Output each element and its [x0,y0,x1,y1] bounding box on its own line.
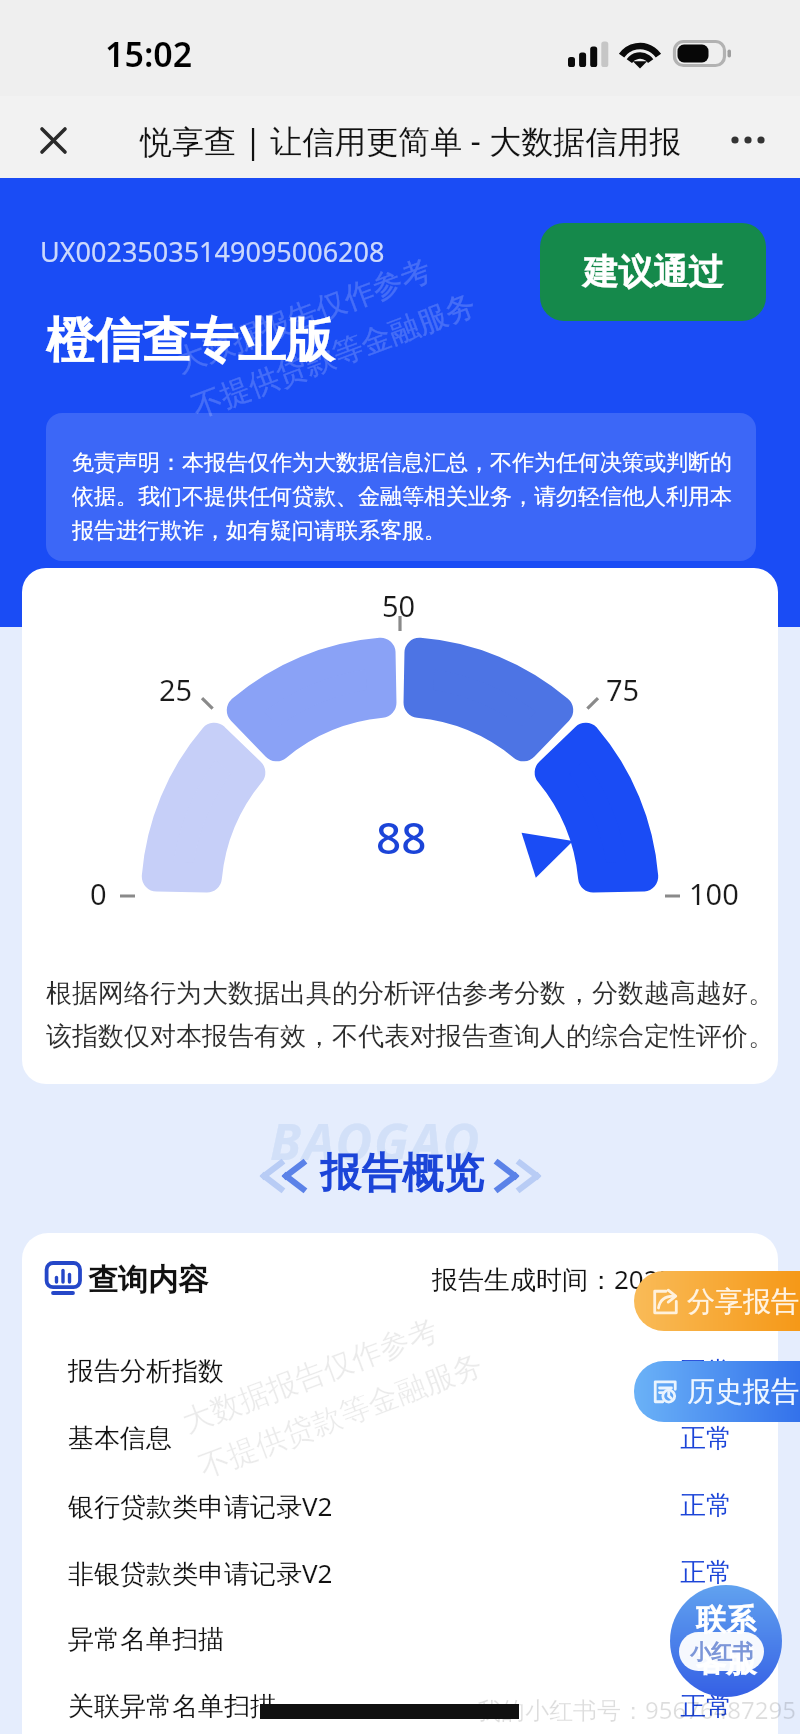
staticText: 报告分析指数 [68,1355,224,1388]
button[interactable]: 建议通过 [540,223,766,321]
staticText: 100 [689,874,739,913]
button[interactable]: 联系客服 [670,1585,782,1697]
staticText: 正常 [680,1489,732,1522]
staticText: 75 [606,670,640,709]
staticText: 15:02 [105,31,193,77]
staticText: 不提供贷款等金融服务 [187,286,481,426]
staticText: 悦享查 | 让信用更简单 - 大数据信用报 [140,119,682,163]
staticText: 50 [382,586,416,625]
button[interactable]: 关联异常名单扫描 [22,1673,778,1734]
staticText: 大数据报告仅作参考 [170,251,436,381]
staticText: 正常 [680,1623,732,1656]
staticText: 橙信查专业版 [46,311,334,371]
button[interactable]: 分享报告 [634,1271,800,1331]
staticText: 0 [90,874,107,913]
staticText: 历史报告 [687,1374,799,1409]
staticText: 报告概览 [320,1148,484,1200]
staticText: 银行贷款类申请记录V2 [68,1488,333,1524]
staticText: 联系 [696,1601,756,1639]
staticText: 该指数仅对本报告有效，不代表对报告查询人的综合定性评价。 [46,1020,774,1053]
staticText: 查询内容 [88,1261,208,1299]
staticText: 不提供贷款等金融服务 [194,1346,488,1486]
staticText: 小红书 [690,1639,753,1665]
staticText: 免责声明：本报告仅作为大数据信息汇总，不作为任何决策或判断的 [72,449,732,477]
staticText: 报告进行欺诈，如有疑问请联系客服。 [72,517,446,545]
staticText: BAOGAO [270,1107,482,1175]
staticText: 正常 [680,1690,732,1723]
staticText: 根据网络行为大数据出具的分析评估参考分数，分数越高越好。 [46,977,774,1010]
staticText: 建议通过 [583,250,723,294]
staticText: 报告生成时间：2025-01-08 [432,1261,750,1297]
staticText: 正常 [680,1556,732,1589]
staticText: 25 [159,670,193,709]
staticText: 我的小红书号：95676487295 [477,1693,797,1726]
button[interactable]: 非银贷款类申请记录V2 [22,1539,778,1606]
staticText: UX00235035149095006208 [40,233,385,270]
staticText: 依据。我们不提供任何贷款、金融等相关业务，请勿轻信他人利用本 [72,483,732,511]
staticText: 客服 [696,1643,756,1681]
staticText: 非银贷款类申请记录V2 [68,1555,333,1591]
button[interactable]: 银行贷款类申请记录V2 [22,1472,778,1539]
staticText: 88 [376,807,427,867]
button[interactable]: More options [720,112,776,168]
button[interactable]: 报告分析指数 [22,1338,778,1405]
staticText: 正常 [680,1355,732,1388]
staticText: 大数据报告仅作参考 [177,1311,443,1441]
button[interactable]: 异常名单扫描 [22,1606,778,1673]
button[interactable]: 历史报告 [634,1361,800,1422]
button[interactable]: 基本信息 [22,1405,778,1472]
button[interactable]: Close [25,112,81,168]
staticText: 正常 [680,1422,732,1455]
staticText: 分享报告 [687,1284,799,1319]
staticText: 异常名单扫描 [68,1623,224,1656]
staticText: 关联异常名单扫描 [68,1690,276,1723]
staticText: 基本信息 [68,1422,172,1455]
